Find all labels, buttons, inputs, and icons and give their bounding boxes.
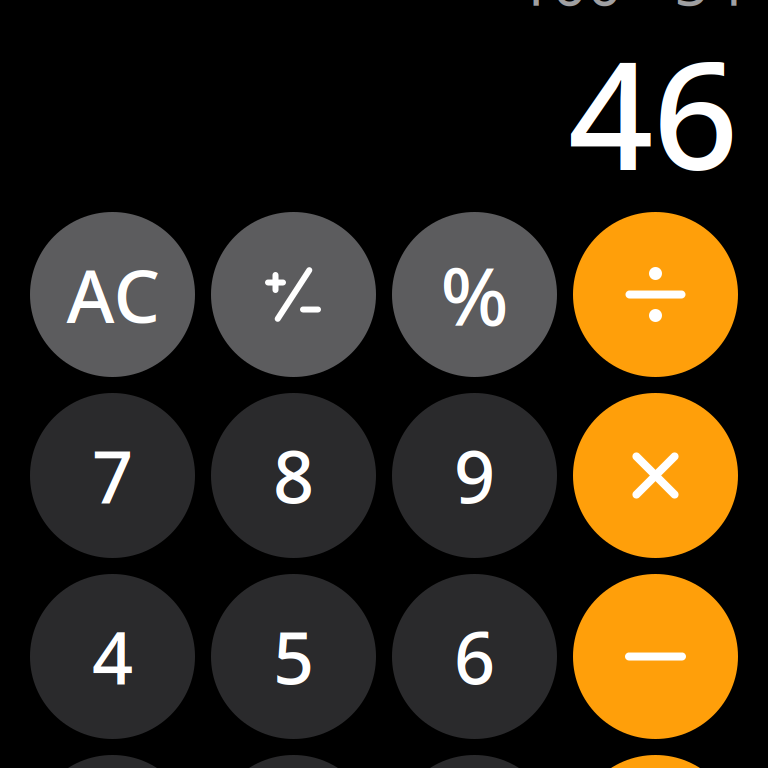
staticText: 46 — [568, 13, 738, 211]
button[interactable]: 9 — [392, 393, 557, 558]
button[interactable]: Percent — [392, 212, 557, 377]
staticText: AC — [66, 246, 160, 343]
staticText: 4 — [92, 609, 133, 704]
button[interactable]: Divide — [573, 212, 738, 377]
staticText: 7 — [92, 428, 133, 523]
button[interactable]: 5 — [211, 574, 376, 739]
button[interactable]: 6 — [392, 574, 557, 739]
staticText: 9 — [454, 428, 495, 523]
staticText: 100 - 54 — [517, 0, 744, 23]
staticText: 6 — [454, 609, 495, 704]
button[interactable]: 2 — [211, 755, 376, 768]
staticText: 5 — [273, 609, 314, 704]
button[interactable]: 1 — [30, 755, 195, 768]
button[interactable]: 8 — [211, 393, 376, 558]
button[interactable]: 7 — [30, 393, 195, 558]
staticText: % — [440, 241, 508, 348]
staticText: 8 — [273, 428, 314, 523]
button[interactable]: Subtract — [573, 574, 738, 739]
button[interactable]: Multiply — [573, 393, 738, 558]
button[interactable]: Add — [573, 755, 738, 768]
button[interactable]: All clear — [30, 212, 195, 377]
button[interactable]: 4 — [30, 574, 195, 739]
button[interactable]: 3 — [392, 755, 557, 768]
button[interactable]: Plus minus — [211, 212, 376, 377]
